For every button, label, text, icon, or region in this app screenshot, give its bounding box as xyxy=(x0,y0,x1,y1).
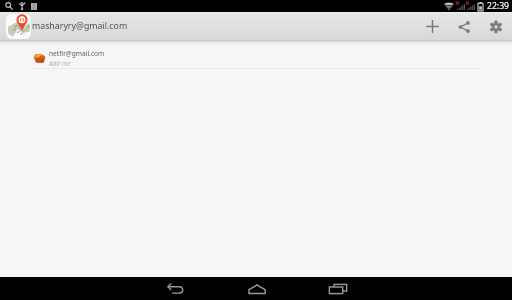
staticText: Add me xyxy=(49,59,71,68)
button[interactable]: Home xyxy=(216,277,297,300)
button[interactable]: Recents xyxy=(297,277,378,300)
button[interactable]: netfir@gmail.com xyxy=(0,47,512,69)
button[interactable]: Settings xyxy=(480,13,512,40)
staticText: 22:39 xyxy=(487,0,509,12)
staticText: masharyry@gmail.com xyxy=(32,20,128,32)
button[interactable]: Back xyxy=(135,277,216,300)
button[interactable]: Add xyxy=(416,13,448,40)
button[interactable]: Share xyxy=(448,13,480,40)
staticText: netfir@gmail.com xyxy=(49,49,105,58)
